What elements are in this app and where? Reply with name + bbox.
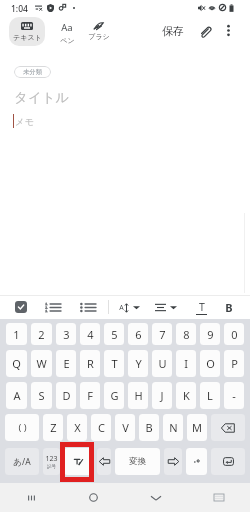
button[interactable]: メモ [15,116,34,128]
button[interactable]: N [163,414,183,441]
button[interactable] [64,448,93,475]
button[interactable]: 2 [31,323,52,345]
button[interactable]: - [224,382,244,409]
button[interactable]: Alignment [155,300,177,315]
button[interactable]: C [91,414,111,441]
button[interactable]: R [80,350,100,377]
button[interactable]: タイトル [14,89,70,106]
staticText: Z [50,420,57,435]
button[interactable]: M [187,414,207,441]
button[interactable]: Checklist [15,301,27,313]
button[interactable] [186,448,207,475]
button[interactable] [97,448,111,475]
button[interactable]: 5 [104,323,124,345]
button[interactable]: D [56,382,76,409]
staticText: 0 [231,327,238,342]
staticText: Y [135,356,142,371]
staticText: 保存 [162,24,184,38]
button[interactable]: Aa [51,17,83,46]
button[interactable]: 保存 [160,22,185,40]
button[interactable]: Switch keyboard [187,483,250,512]
staticText: N [169,420,178,435]
button[interactable]: 8 [176,323,196,345]
staticText: 記号 [47,464,56,470]
button[interactable]: あ/A [5,448,39,475]
button[interactable]: Home [62,483,124,512]
staticText: 6 [135,327,142,342]
button[interactable]: B [221,299,236,315]
button[interactable]: Hide keyboard [124,483,187,512]
staticText: あ/A [13,456,31,468]
button[interactable]: P [224,350,244,377]
staticText: 4 [87,327,94,342]
button[interactable]: K [176,382,196,409]
button[interactable]: More options [218,20,239,41]
button[interactable]: 123 [43,448,60,475]
button[interactable]: Z [43,414,63,441]
staticText: W [36,356,47,371]
button[interactable]: G [104,382,124,409]
button[interactable]: T [104,350,124,377]
button[interactable]: ブラシ [82,17,115,46]
button[interactable] [211,414,245,441]
button[interactable]: 1 [6,323,27,345]
button[interactable]: 7 [152,323,172,345]
staticText: J [160,388,164,403]
staticText: O [206,356,215,371]
button[interactable]: 変換 [115,448,160,475]
staticText: 1 [13,327,20,342]
button[interactable]: テキスト [9,17,45,46]
staticText: X [74,420,81,435]
button[interactable]: A [6,382,27,409]
button[interactable]: 9 [200,323,220,345]
button[interactable]: H [128,382,148,409]
staticText: I [184,356,188,371]
button[interactable]: X [67,414,87,441]
button[interactable] [211,448,245,475]
button[interactable]: Numbered list [44,302,61,313]
button[interactable]: Q [6,350,27,377]
staticText: テキスト [13,33,42,42]
staticText: M [192,420,202,435]
staticText: K [183,388,190,403]
button[interactable]: I [176,350,196,377]
staticText: P [231,356,238,371]
staticText: T [199,300,205,314]
staticText: B [225,300,233,315]
button[interactable]: V [115,414,135,441]
button[interactable]: B [139,414,159,441]
staticText: C [98,420,105,435]
button[interactable]: Bulleted list [79,302,96,313]
staticText: V [122,420,129,435]
button[interactable]: Underline [194,299,209,315]
staticText: Aa [61,21,73,34]
staticText: U [158,356,167,371]
button[interactable]: U [152,350,172,377]
button[interactable]: 0 [224,323,244,345]
button[interactable]: W [31,350,52,377]
button[interactable]: 3 [56,323,76,345]
staticText: 未分類 [23,68,42,76]
button[interactable]: Recents [0,483,62,512]
staticText: H [134,388,143,403]
button[interactable] [164,448,182,475]
button[interactable]: L [200,382,220,409]
button[interactable]: J [152,382,172,409]
button[interactable]: E [56,350,76,377]
staticText: 5 [111,327,118,342]
staticText: Q [12,356,21,371]
button[interactable]: ( ) [5,414,39,441]
button[interactable]: Attach [193,20,217,44]
button[interactable]: 6 [128,323,148,345]
staticText: G [110,388,119,403]
button[interactable]: 4 [80,323,100,345]
staticText: 変換 [129,456,146,467]
button[interactable]: O [200,350,220,377]
staticText: R [87,356,94,371]
staticText: 7 [159,327,166,342]
button[interactable]: S [31,382,52,409]
button[interactable]: F [80,382,100,409]
button[interactable]: 未分類 [14,66,51,78]
button[interactable]: Text size [119,300,140,315]
button[interactable]: Y [128,350,148,377]
